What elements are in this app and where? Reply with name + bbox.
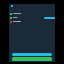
button[interactable]: Running [10,12,55,15]
button[interactable]: Logo [11,5,13,7]
staticText: Running [13,12,21,15]
button[interactable]: Stopped [10,20,55,23]
button[interactable]: Sync [10,16,55,19]
staticText: Sync [13,16,18,19]
staticText: Stopped [13,20,21,23]
button[interactable] [12,57,52,61]
button[interactable] [12,53,52,56]
